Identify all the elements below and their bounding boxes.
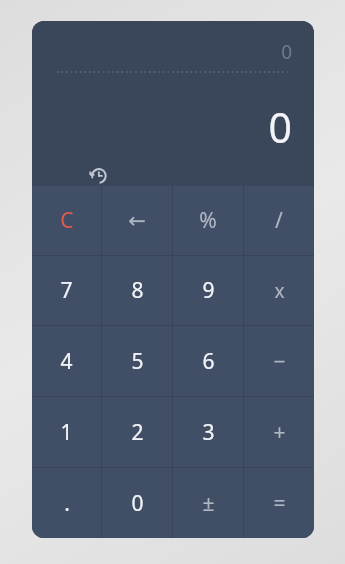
staticText: . <box>64 489 70 518</box>
staticText: 4 <box>60 347 73 376</box>
button[interactable]: Backspace <box>102 186 172 255</box>
button[interactable]: 4 <box>32 326 101 396</box>
button[interactable]: Plus minus <box>173 468 243 538</box>
button[interactable]: Divide <box>244 186 314 255</box>
staticText: 6 <box>202 347 215 376</box>
button[interactable]: Decimal point <box>32 468 101 538</box>
button[interactable]: 6 <box>173 326 243 396</box>
button[interactable]: 1 <box>32 397 101 467</box>
button[interactable]: Percent <box>173 186 243 255</box>
staticText: ± <box>202 489 215 518</box>
staticText: % <box>199 206 217 235</box>
button[interactable]: 7 <box>32 256 101 325</box>
button[interactable]: Plus <box>244 397 314 467</box>
staticText: 3 <box>202 418 215 447</box>
staticText: − <box>273 347 286 376</box>
button[interactable]: Equals <box>244 468 314 538</box>
staticText: 0 <box>281 39 292 65</box>
button[interactable]: Minus <box>244 326 314 396</box>
staticText: 5 <box>131 347 144 376</box>
staticText: 7 <box>60 276 73 305</box>
button[interactable]: 9 <box>173 256 243 325</box>
staticText: 2 <box>131 418 144 447</box>
button[interactable]: 2 <box>102 397 172 467</box>
staticText: 8 <box>131 276 144 305</box>
button[interactable]: 8 <box>102 256 172 325</box>
staticText: 0 <box>131 489 144 518</box>
staticText: 9 <box>202 276 215 305</box>
staticText: 1 <box>60 418 73 447</box>
button[interactable]: 5 <box>102 326 172 396</box>
button[interactable]: Clear <box>32 186 101 255</box>
button[interactable]: Multiply <box>244 256 314 325</box>
staticText: C <box>60 206 74 235</box>
staticText: ← <box>128 209 146 233</box>
button[interactable]: 3 <box>173 397 243 467</box>
button[interactable]: 0 <box>102 468 172 538</box>
staticText: x <box>274 278 285 304</box>
staticText: / <box>275 206 283 235</box>
staticText: 0 <box>268 99 292 155</box>
staticText: = <box>273 489 286 518</box>
button[interactable]: History <box>82 159 114 191</box>
staticText: + <box>273 418 286 447</box>
